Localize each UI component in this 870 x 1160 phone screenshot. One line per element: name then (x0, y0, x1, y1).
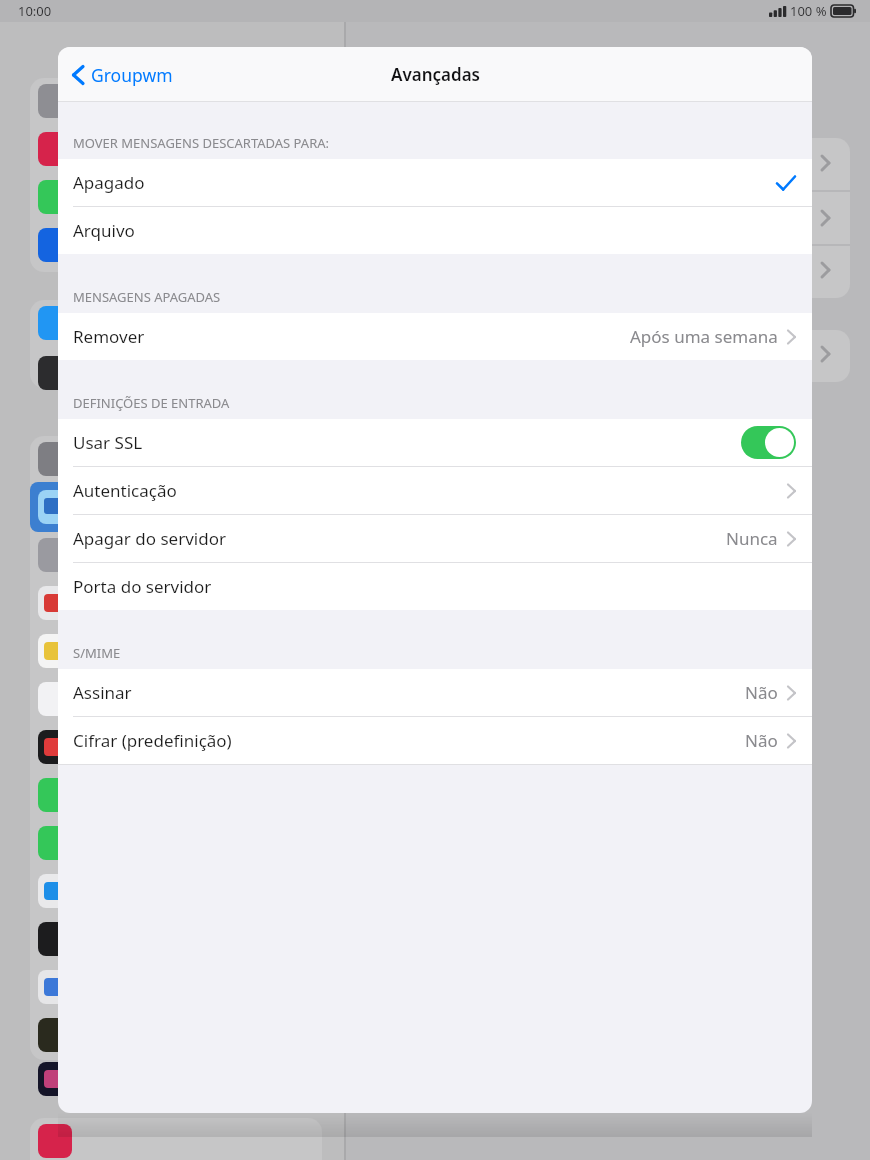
staticText: MOVER MENSAGENS DESCARTADAS PARA: (73, 134, 330, 152)
staticText: Porta do servidor (73, 575, 212, 598)
button[interactable]: Apagado (58, 159, 812, 206)
button[interactable]: Cifrar (predefinição) (58, 717, 812, 764)
button[interactable]: Groupwm (58, 55, 183, 95)
button[interactable]: Assinar (58, 669, 812, 716)
staticText: Não (745, 681, 778, 704)
staticText: MENSAGENS APAGADAS (73, 288, 221, 306)
staticText: Não (745, 729, 778, 752)
staticText: S/MIME (73, 644, 121, 662)
staticText: Arquivo (73, 219, 135, 242)
staticText: DEFINIÇÕES DE ENTRADA (73, 394, 230, 412)
staticText: Nunca (726, 527, 778, 550)
button[interactable]: Autenticação (58, 467, 812, 514)
staticText: 100 % (790, 2, 827, 20)
staticText: 10:00 (18, 2, 52, 20)
staticText: Apagar do servidor (73, 527, 226, 550)
staticText: Apagado (73, 171, 145, 194)
button[interactable]: Arquivo (58, 207, 812, 254)
button[interactable]: Usar SSL (58, 419, 812, 466)
staticText: Groupwm (91, 63, 173, 87)
staticText: Após uma semana (630, 325, 778, 348)
button[interactable]: Apagar do servidor (58, 515, 812, 562)
button[interactable]: Usar SSL, ativado (741, 426, 796, 459)
staticText: Assinar (73, 681, 132, 704)
staticText: Remover (73, 325, 145, 348)
button[interactable]: Porta do servidor (58, 563, 812, 610)
staticText: Usar SSL (73, 431, 143, 454)
button[interactable]: Remover (58, 313, 812, 360)
staticText: Autenticação (73, 479, 177, 502)
staticText: Avançadas (391, 63, 480, 86)
staticText: Cifrar (predefinição) (73, 729, 232, 752)
